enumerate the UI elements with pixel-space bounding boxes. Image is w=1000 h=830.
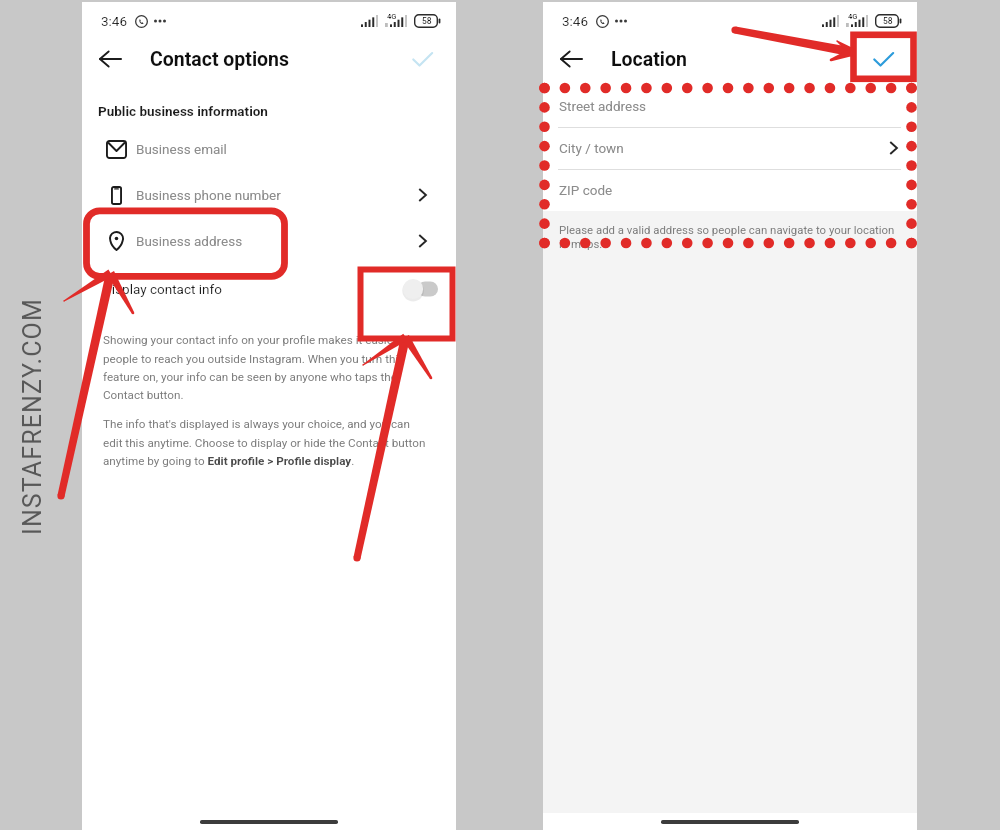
button[interactable]: ZIP code [543,170,917,211]
staticText: 58 [883,16,893,26]
staticText: Please add a valid address so people can… [559,223,903,251]
staticText: Business phone number [136,187,281,203]
staticText: ZIP code [559,182,613,198]
button[interactable]: Back [549,42,593,76]
button[interactable]: City / town [543,128,917,169]
staticText: 4G [387,12,397,21]
button[interactable]: Done [400,42,444,76]
button[interactable]: Display contact info toggle [402,277,438,301]
button[interactable]: Done [861,42,905,76]
staticText: Public business information [98,103,268,119]
staticText: The info that's displayed is always your… [103,417,431,467]
staticText: Showing your contact info on your profil… [103,333,431,401]
staticText: 4G [848,12,858,21]
button[interactable]: Display contact info [82,264,456,314]
button[interactable]: Business email [82,126,456,172]
staticText: Display contact info [103,281,222,297]
staticText: Business address [136,233,243,249]
button[interactable]: Business phone number [82,172,456,218]
button[interactable]: Business address [82,218,456,264]
staticText: 58 [422,16,432,26]
staticText: 3:46 [562,13,589,29]
staticText: Location [611,48,687,71]
button[interactable]: Street address [543,86,917,127]
staticText: INSTAFRENZY.COM [18,298,44,535]
staticText: Street address [559,98,647,114]
staticText: Contact options [150,48,290,71]
staticText: Business email [136,141,227,157]
staticText: 3:46 [101,13,128,29]
button[interactable]: Back [88,42,132,76]
staticText: City / town [559,140,624,156]
